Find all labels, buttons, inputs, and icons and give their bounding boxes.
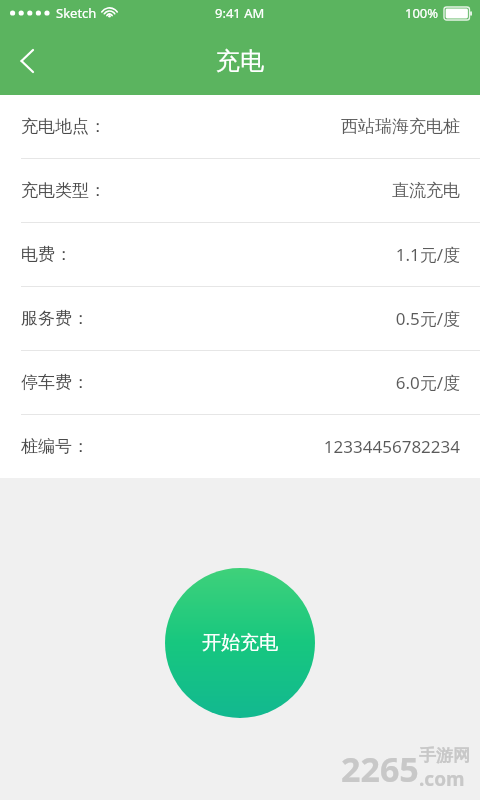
staticText: 桩编号：: [21, 436, 89, 457]
button[interactable]: 电费：: [0, 223, 480, 286]
staticText: .com: [419, 766, 465, 792]
staticText: 停车费：: [21, 372, 89, 393]
button[interactable]: 充电地点：: [0, 95, 480, 158]
staticText: 直流充电: [392, 180, 460, 201]
button[interactable]: Back: [0, 34, 54, 88]
staticText: 2265: [341, 746, 419, 792]
button[interactable]: 服务费：: [0, 287, 480, 350]
staticText: 手游网: [419, 745, 470, 766]
staticText: 开始充电: [202, 631, 278, 655]
staticText: 服务费：: [21, 308, 89, 329]
staticText: 充电地点：: [21, 116, 106, 137]
button[interactable]: 开始充电: [165, 568, 315, 718]
staticText: 充电类型：: [21, 180, 106, 201]
button[interactable]: 桩编号：: [0, 415, 480, 478]
staticText: 0.5元/度: [395, 307, 460, 330]
staticText: 12334456782234: [323, 435, 460, 458]
staticText: 电费：: [21, 244, 72, 265]
staticText: 9:41 AM: [215, 4, 265, 22]
staticText: 6.0元/度: [395, 371, 460, 394]
button[interactable]: 停车费：: [0, 351, 480, 414]
button[interactable]: 充电类型：: [0, 159, 480, 222]
staticText: 1.1元/度: [395, 243, 460, 266]
staticText: 西站瑞海充电桩: [341, 116, 460, 137]
staticText: Sketch: [56, 4, 97, 22]
staticText: 充电: [216, 46, 264, 76]
staticText: 100%: [405, 4, 439, 22]
